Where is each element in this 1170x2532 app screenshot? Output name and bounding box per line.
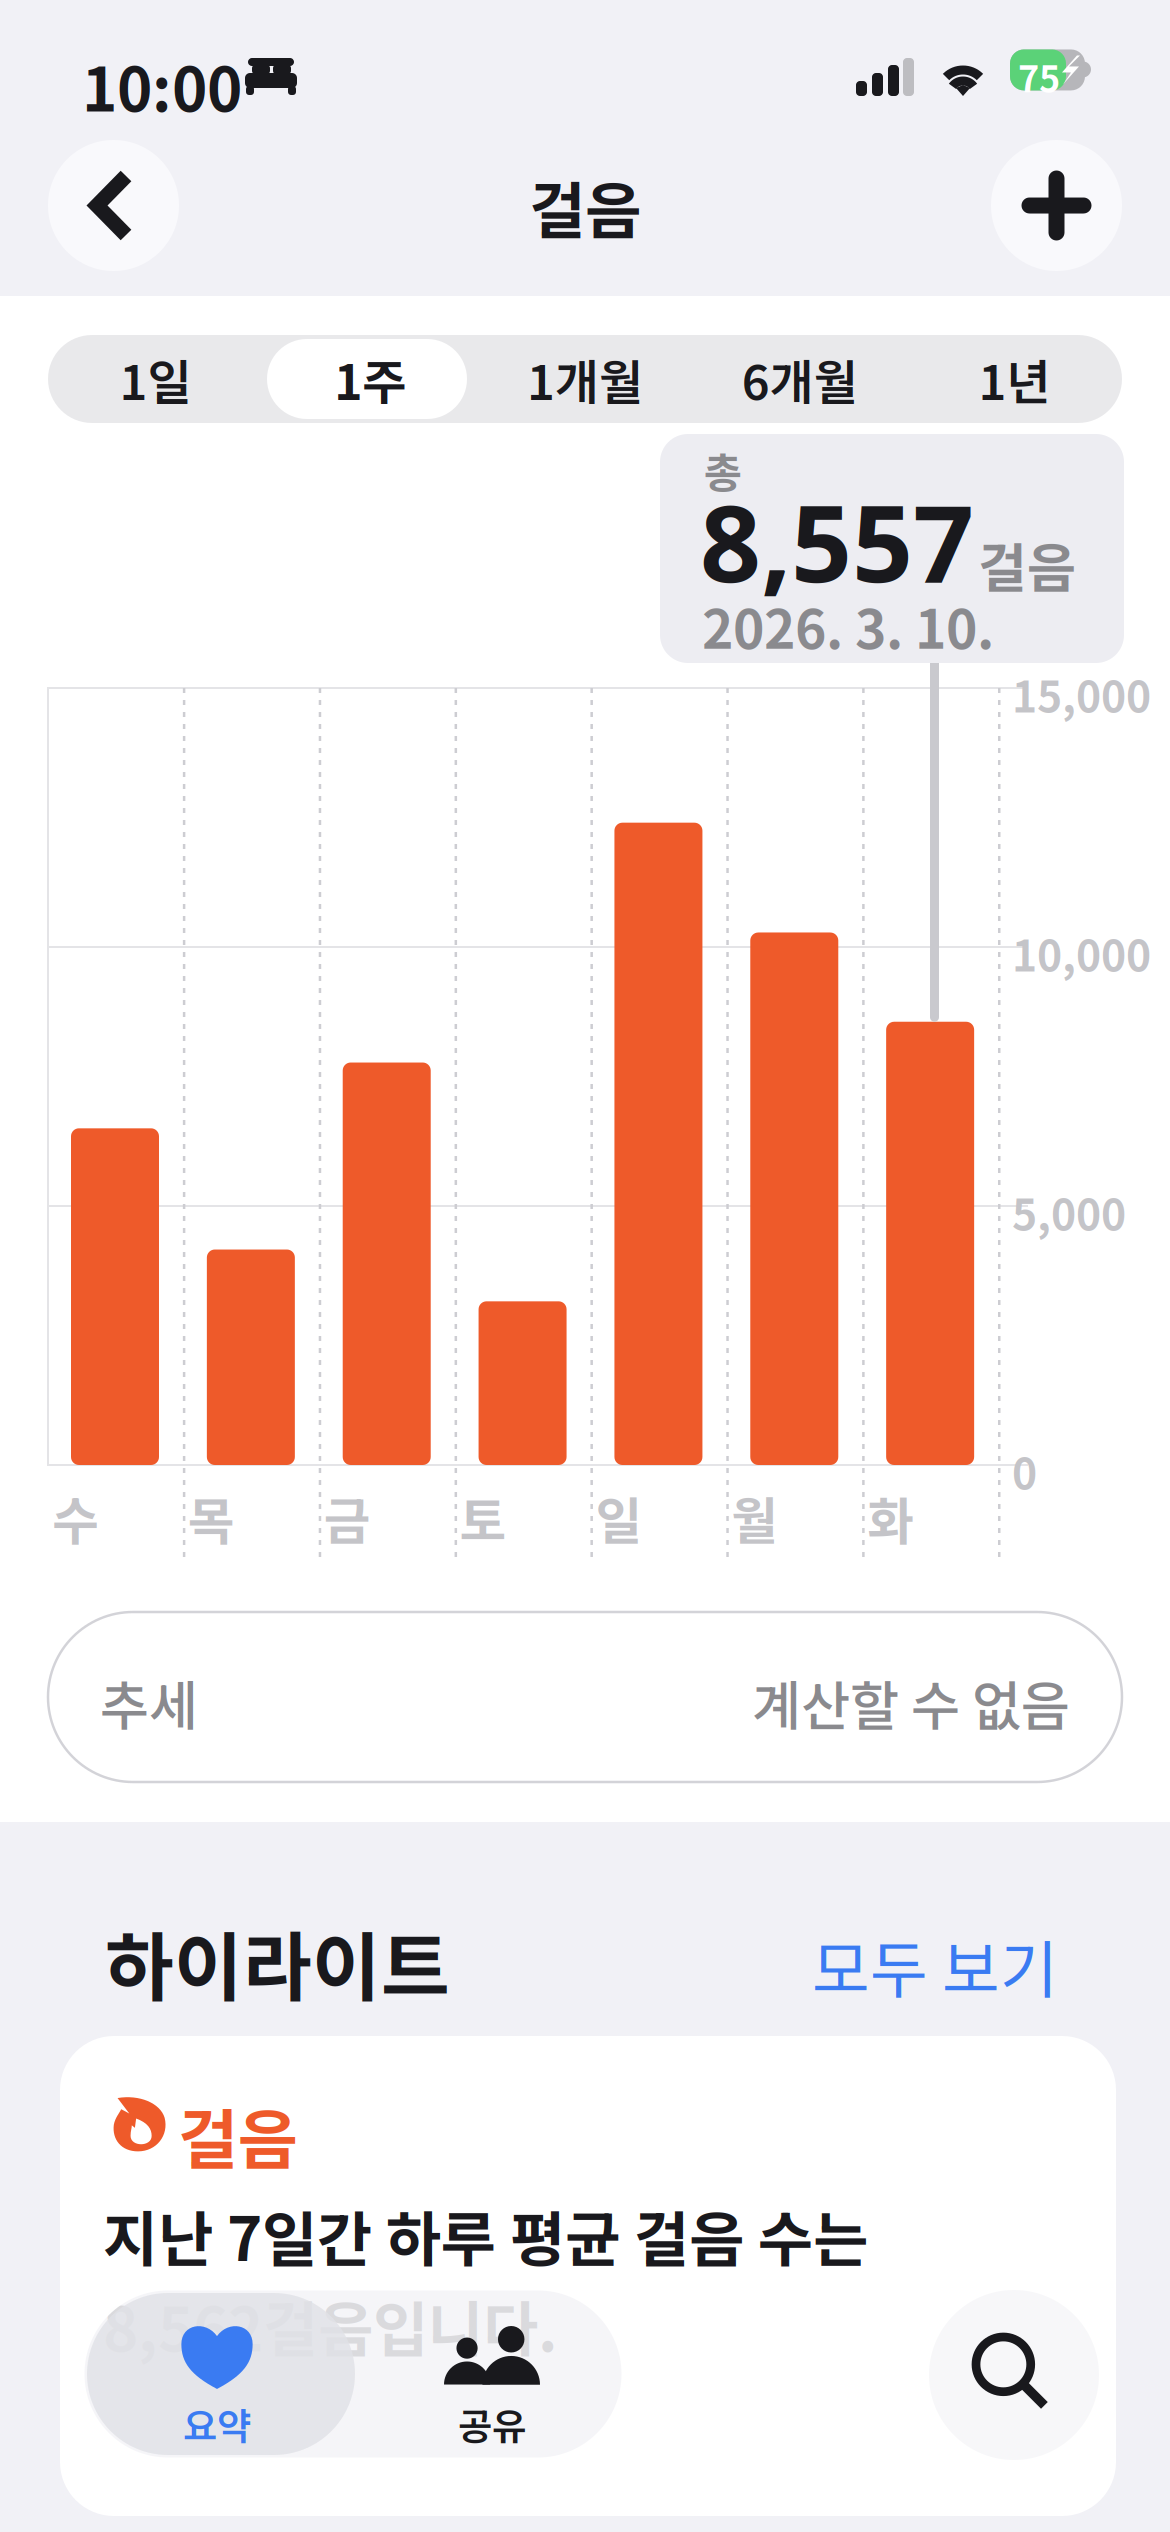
staticText: 걸음	[178, 2088, 298, 2183]
button[interactable]: 요약	[78, 2284, 356, 2464]
staticText: 10,000	[1012, 922, 1151, 984]
button[interactable]: 검색	[923, 2284, 1105, 2466]
staticText: 10:00	[82, 42, 242, 129]
button[interactable]: 뒤로	[48, 140, 179, 271]
staticText: 75	[1018, 50, 1060, 102]
staticText: 화	[867, 1481, 914, 1554]
button[interactable]: 1년	[907, 335, 1122, 423]
staticText: 1주	[334, 344, 406, 414]
staticText: 걸음	[529, 162, 641, 251]
staticText: 2026. 3. 10.	[702, 587, 994, 664]
staticText: 총	[704, 440, 742, 500]
staticText: 공유	[458, 2397, 526, 2451]
staticText: 목	[188, 1481, 235, 1554]
staticText: 5,000	[1012, 1181, 1126, 1243]
staticText: 추세	[100, 1664, 198, 1741]
staticText: 15,000	[1012, 663, 1151, 725]
button[interactable]: 6개월	[692, 335, 907, 423]
button[interactable]: 추세	[48, 1612, 1122, 1782]
staticText: 하이라이트	[105, 1908, 450, 2016]
button[interactable]: 모두 보기	[0, 1920, 1058, 2011]
staticText: 모두 보기	[812, 1920, 1058, 2011]
staticText: 6개월	[742, 344, 858, 414]
button[interactable]: 추가	[991, 140, 1122, 271]
staticText: 1년	[979, 344, 1051, 414]
staticText: 월	[731, 1481, 778, 1554]
button[interactable]: 1주	[263, 335, 478, 423]
staticText: 계산할 수 없음	[752, 1664, 1070, 1741]
staticText: 금	[324, 1481, 371, 1554]
staticText: 1개월	[527, 344, 643, 414]
staticText: 걸음	[978, 526, 1076, 603]
button[interactable]: 공유	[356, 2284, 628, 2464]
staticText: 8,557	[700, 470, 974, 612]
staticText: 지난 7일간 하루 평균 걸음 수는	[103, 2192, 868, 2279]
staticText: 일	[595, 1481, 642, 1554]
button[interactable]: 1개월	[478, 335, 692, 423]
staticText: 수	[52, 1481, 99, 1554]
staticText: 8,562걸음입니다.	[103, 2282, 558, 2369]
staticText: 토	[460, 1481, 507, 1554]
staticText: 요약	[183, 2397, 251, 2451]
button[interactable]: 1일	[48, 335, 263, 423]
staticText: 1일	[119, 344, 191, 414]
staticText: 0	[1012, 1440, 1037, 1502]
